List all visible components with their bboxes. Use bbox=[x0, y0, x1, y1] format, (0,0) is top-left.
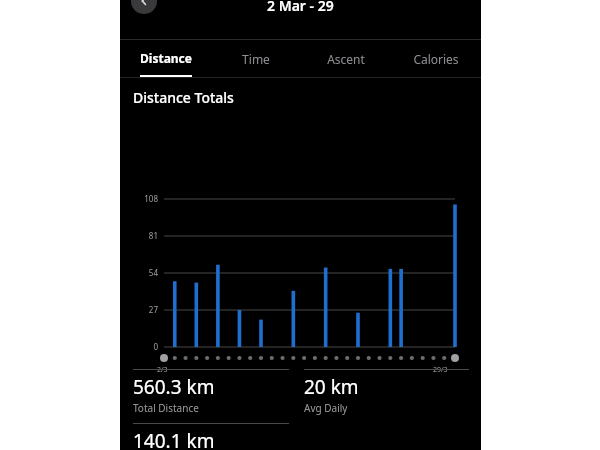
button[interactable]: 140.1 km bbox=[133, 423, 289, 450]
staticText: 108 bbox=[120, 193, 158, 204]
staticText: 2/3 bbox=[157, 365, 168, 375]
staticText: 20 km bbox=[304, 374, 359, 400]
staticText: 29/3 bbox=[433, 365, 448, 375]
button[interactable]: Back bbox=[131, 0, 157, 14]
button[interactable]: Ascent bbox=[301, 40, 391, 78]
staticText: Avg Daily bbox=[304, 401, 348, 415]
staticText: 27 bbox=[120, 304, 158, 315]
staticText: 140.1 km bbox=[133, 428, 215, 450]
staticText: 0 bbox=[120, 341, 158, 352]
staticText: Distance bbox=[140, 50, 192, 66]
button[interactable]: 20 km bbox=[304, 369, 469, 423]
staticText: 560.3 km bbox=[133, 374, 215, 400]
button[interactable]: Time bbox=[211, 40, 301, 78]
staticText: Total Distance bbox=[133, 401, 199, 415]
button[interactable]: Calories bbox=[391, 40, 481, 78]
button[interactable]: 560.3 km bbox=[133, 369, 289, 423]
staticText: Ascent bbox=[327, 51, 365, 67]
staticText: 54 bbox=[120, 267, 158, 278]
staticText: 81 bbox=[120, 230, 158, 241]
button[interactable]: Distance bbox=[120, 40, 211, 78]
staticText: Calories bbox=[413, 51, 459, 67]
staticText: Time bbox=[242, 51, 270, 67]
staticText: Distance Totals bbox=[133, 88, 234, 107]
staticText: 2 Mar - 29 bbox=[267, 0, 334, 15]
